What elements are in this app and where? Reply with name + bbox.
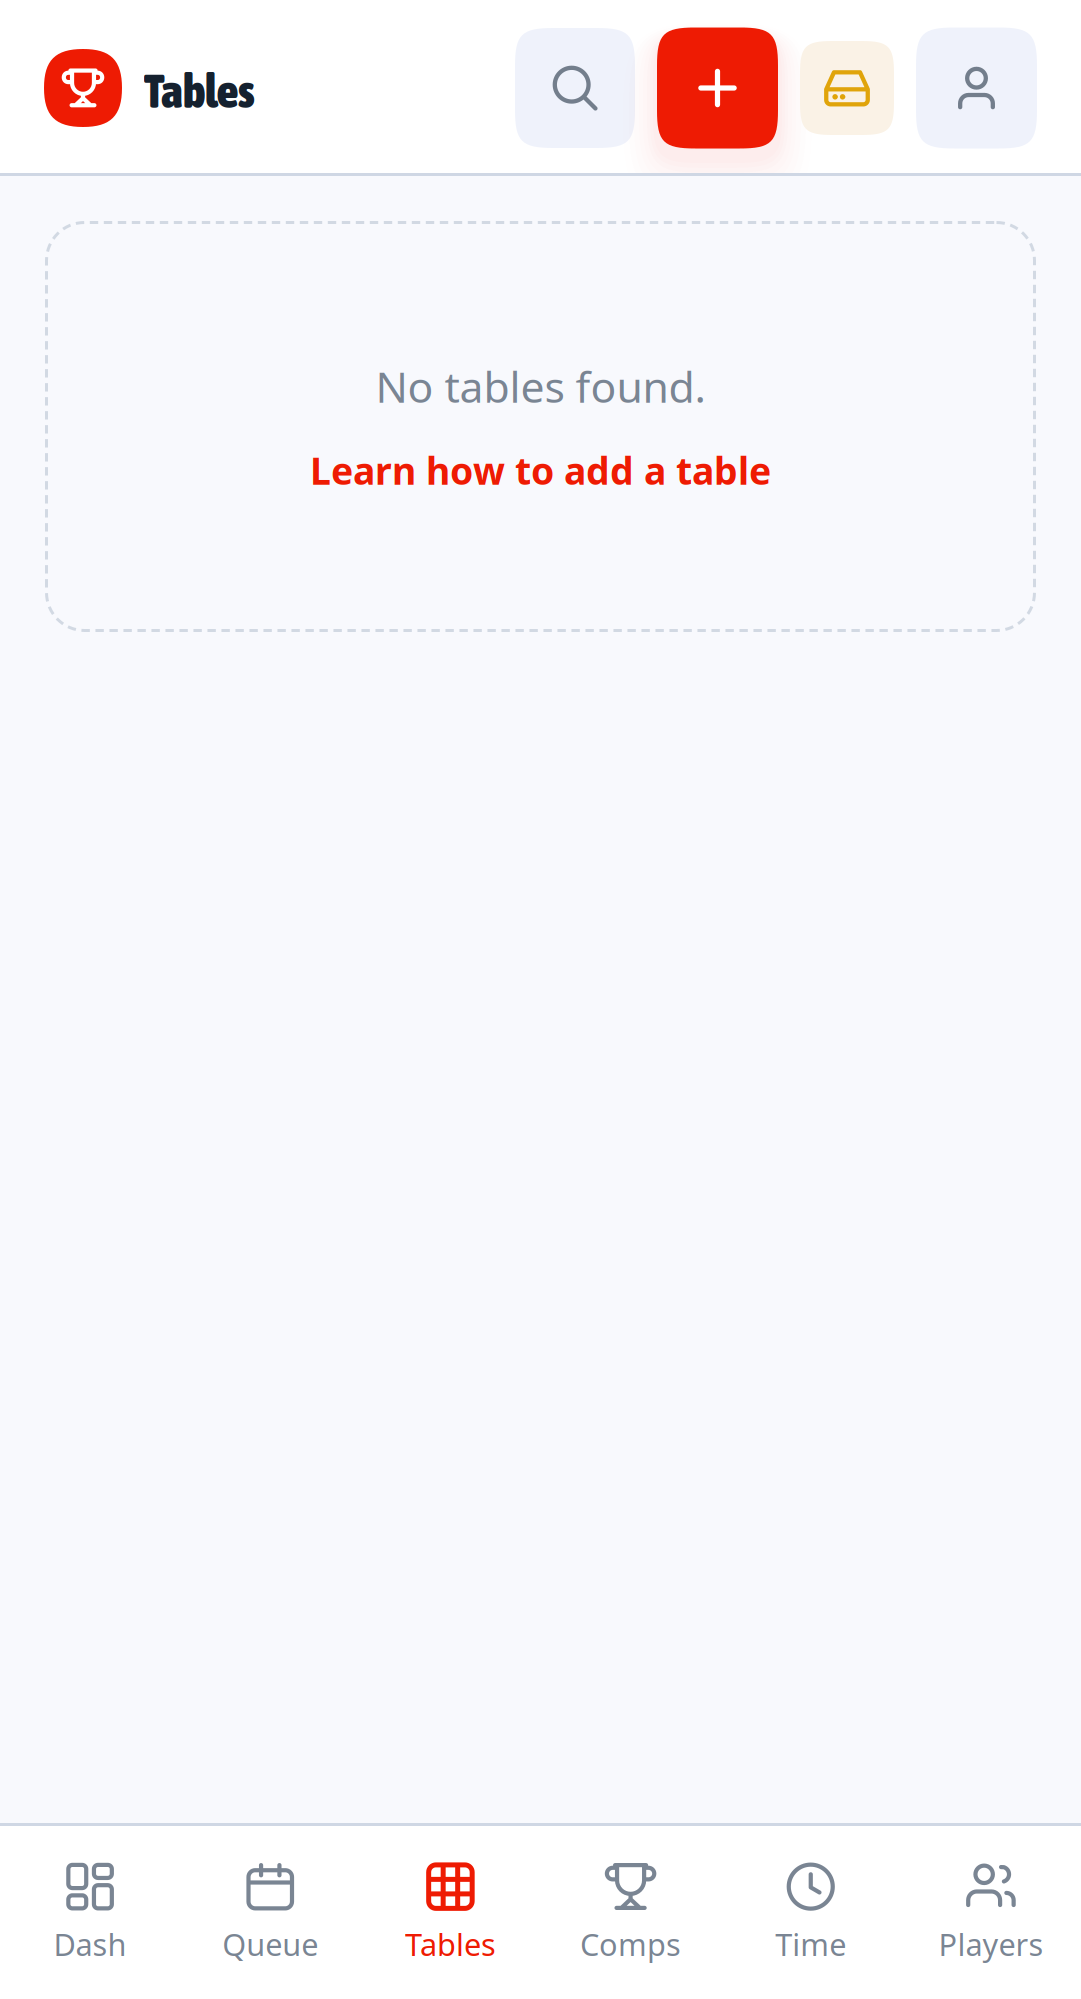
staticText: Queue xyxy=(222,1924,318,1964)
button[interactable]: Archived xyxy=(800,41,894,135)
staticText: Dash xyxy=(54,1924,127,1964)
staticText: No tables found. xyxy=(375,358,705,415)
button[interactable]: Tables xyxy=(360,1828,540,1994)
button[interactable]: Queue xyxy=(180,1828,360,1994)
staticText: Players xyxy=(938,1924,1043,1964)
button[interactable]: Add table xyxy=(657,27,778,148)
staticText: Tables xyxy=(405,1924,496,1964)
staticText: Comps xyxy=(580,1924,681,1964)
button[interactable]: Tables xyxy=(44,49,254,127)
button[interactable]: Search xyxy=(515,28,635,148)
button[interactable]: Players xyxy=(901,1828,1081,1994)
staticText: Time xyxy=(775,1924,846,1964)
button[interactable]: Learn how to add a table xyxy=(310,414,771,495)
button[interactable]: Profile xyxy=(916,27,1037,148)
staticText: Tables xyxy=(144,64,254,118)
staticText: Learn how to add a table xyxy=(310,445,771,495)
button[interactable]: Time xyxy=(721,1828,901,1994)
button[interactable]: Dash xyxy=(0,1828,180,1994)
button[interactable]: Comps xyxy=(540,1828,721,1994)
